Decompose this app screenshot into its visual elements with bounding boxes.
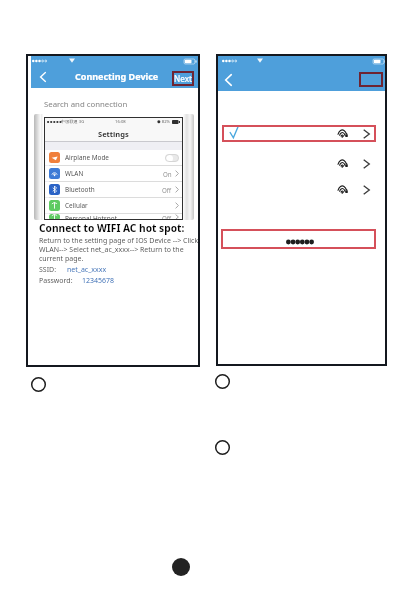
staticText: Bluetooth (65, 185, 95, 194)
button[interactable]: Back (217, 69, 239, 91)
staticText: 12345678 (82, 276, 115, 286)
staticText: Next (174, 73, 192, 84)
button[interactable]: Next (172, 71, 194, 86)
button[interactable]: Back (32, 67, 53, 87)
staticText: net_ac_xxxx (67, 265, 107, 275)
button[interactable]: Password field (221, 229, 376, 249)
button[interactable]: WLAN (49, 166, 179, 181)
staticText: Personal Hotspot (65, 214, 117, 220)
staticText: Settings (98, 129, 129, 139)
button[interactable]: Cellular (49, 198, 179, 213)
staticText: Connecting Device (75, 70, 159, 82)
button[interactable]: Wi-Fi network (222, 155, 376, 172)
staticText: WLAN (65, 169, 84, 178)
staticText: Off (162, 186, 172, 194)
button[interactable]: Confirm (359, 72, 383, 87)
staticText: Return to the setting page of IOS Device… (39, 236, 213, 263)
button[interactable] (222, 125, 376, 142)
staticText: Airplane Mode (65, 153, 109, 162)
staticText: 中国联通 3G (61, 119, 85, 125)
staticText: On (163, 170, 172, 178)
staticText: Connect to WIFI AC hot spot: (39, 221, 185, 235)
staticText: Search and connection (44, 99, 128, 110)
staticText: SSID: (39, 265, 57, 275)
button[interactable]: Bluetooth (49, 182, 179, 197)
staticText: Cellular (65, 201, 88, 210)
staticText: 16:08 (115, 119, 126, 125)
button[interactable]: Personal Hotspot (49, 214, 179, 220)
button[interactable]: Airplane Mode (49, 150, 179, 165)
button[interactable]: Wi-Fi network (222, 181, 376, 198)
staticText: ● 82% (157, 119, 171, 125)
staticText: Password: (39, 276, 73, 286)
staticText: Off (162, 214, 172, 220)
